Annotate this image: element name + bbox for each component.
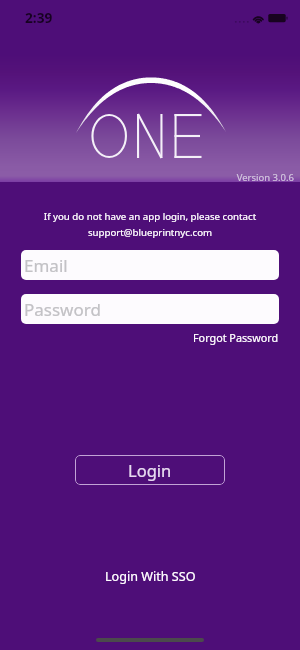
staticText: Login With SSO: [105, 568, 196, 585]
staticText: Version 3.0.6: [0, 171, 294, 184]
staticText: Login: [128, 459, 172, 481]
staticText: If you do not have an app login, please …: [0, 210, 300, 239]
staticText: Forgot Password: [193, 330, 279, 345]
button[interactable]: Email: [21, 250, 279, 280]
button[interactable]: Login With SSO: [95, 563, 206, 590]
button[interactable]: Password: [21, 294, 279, 324]
button[interactable]: Login: [75, 455, 225, 485]
staticText: Password: [24, 298, 101, 321]
staticText: 2:39: [25, 8, 53, 27]
button[interactable]: Forgot Password: [193, 330, 279, 345]
staticText: Email: [24, 254, 68, 277]
